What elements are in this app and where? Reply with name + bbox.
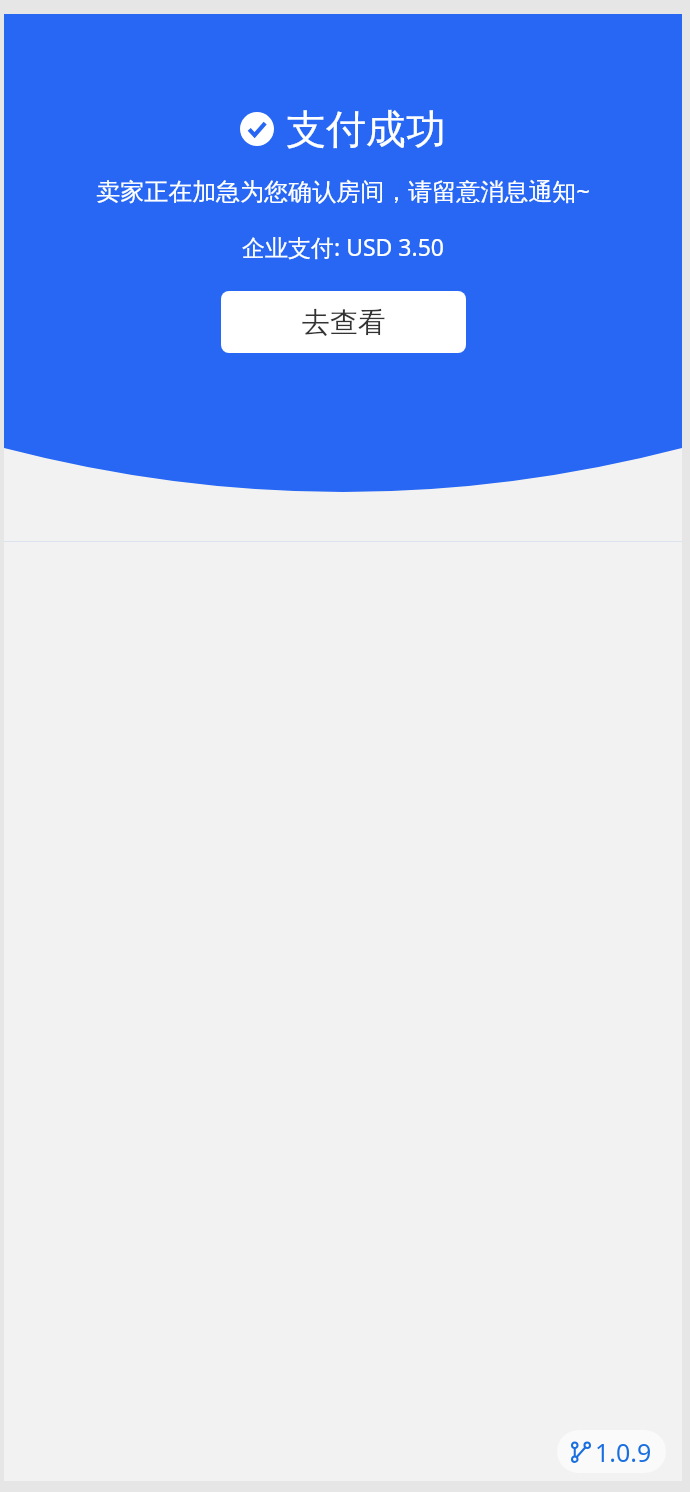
staticText: 卖家正在加急为您确认房间，请留意消息通知~ — [96, 174, 590, 207]
button[interactable]: 去查看 — [221, 291, 466, 353]
staticText: 企业支付: USD 3.50 — [242, 231, 444, 262]
staticText: 1.0.9 — [595, 1435, 652, 1469]
staticText: 去查看 — [302, 305, 386, 340]
button[interactable]: Version 1.0.9 — [557, 1430, 666, 1473]
staticText: 支付成功 — [286, 104, 446, 154]
